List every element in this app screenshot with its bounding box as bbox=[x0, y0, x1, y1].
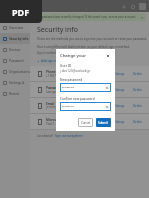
staticText: Password bbox=[9, 59, 24, 63]
button[interactable]: Submit bbox=[96, 118, 111, 127]
button[interactable]: Show password bbox=[104, 85, 109, 90]
button[interactable]: Security info bbox=[0, 33, 30, 44]
button[interactable]: PDF bbox=[0, 0, 42, 23]
staticText: Cancel bbox=[81, 121, 91, 125]
staticText: Change your password bbox=[60, 53, 105, 59]
button[interactable]: Cancel bbox=[78, 118, 93, 127]
staticText: Organizations bbox=[9, 70, 30, 74]
staticText: Recent activity bbox=[9, 92, 30, 96]
button[interactable]: Delete bbox=[133, 88, 142, 92]
staticText: Settings & Privacy bbox=[9, 81, 30, 85]
button[interactable]: Phone bbox=[30, 66, 149, 81]
staticText: Phone bbox=[46, 70, 56, 74]
staticText: PDF bbox=[12, 6, 30, 18]
staticText: Submit bbox=[98, 121, 109, 125]
button[interactable]: Settings & Privacy bbox=[0, 77, 30, 88]
staticText: j.doe123@outlook.jp bbox=[60, 69, 90, 73]
button[interactable]: Password bbox=[30, 82, 149, 97]
staticText: Security info bbox=[9, 37, 29, 41]
staticText: New password bbox=[60, 78, 83, 82]
button[interactable]: Delete bbox=[133, 120, 142, 124]
button[interactable]: Organizations bbox=[0, 66, 30, 77]
button[interactable]: Settings bbox=[121, 4, 127, 10]
staticText: You're using Microsoft Authenticator as … bbox=[37, 45, 130, 49]
staticText: Add sign-in method bbox=[41, 59, 69, 63]
staticText: Confirm new password bbox=[60, 97, 95, 101]
staticText: These are the methods you use to sign in… bbox=[37, 37, 147, 41]
button[interactable]: Show password bbox=[104, 104, 109, 109]
staticText: Email bbox=[46, 102, 55, 106]
button[interactable]: Change bbox=[114, 72, 125, 76]
staticText: Sign out everywhere bbox=[55, 134, 83, 138]
button[interactable]: •••••••••• bbox=[60, 102, 111, 111]
button[interactable]: Change bbox=[114, 120, 125, 124]
staticText: Last updated: 3 days ago bbox=[46, 90, 78, 94]
button[interactable]: Your password was recently changed. If t… bbox=[33, 13, 146, 21]
staticText: + bbox=[37, 58, 40, 63]
button[interactable]: Delete bbox=[133, 104, 142, 108]
staticText: User ID bbox=[60, 64, 72, 68]
button[interactable]: Lost device? bbox=[37, 134, 83, 138]
staticText: Password bbox=[46, 86, 61, 90]
button[interactable]: Delete bbox=[133, 72, 142, 76]
staticText: Security info bbox=[37, 25, 78, 35]
button[interactable]: Email bbox=[30, 98, 149, 113]
staticText: Microsoft Authenticator bbox=[46, 118, 83, 122]
staticText: +1 555 ******89 bbox=[46, 74, 68, 78]
button[interactable]: Password bbox=[0, 55, 30, 66]
staticText: Sign-in methods below are available to y… bbox=[37, 51, 90, 55]
staticText: •••••••••• bbox=[62, 86, 104, 90]
button[interactable]: Recent activity bbox=[0, 88, 30, 99]
staticText: Pixel 7 - Push notification bbox=[46, 122, 78, 126]
button[interactable]: Devices bbox=[0, 44, 30, 55]
staticText: Devices bbox=[9, 48, 21, 52]
staticText: ✕ bbox=[141, 16, 144, 19]
button[interactable]: + bbox=[37, 58, 69, 63]
staticText: Overview bbox=[9, 26, 23, 30]
button[interactable]: Change bbox=[114, 104, 125, 108]
button[interactable]: •••••••••• bbox=[60, 83, 111, 92]
button[interactable]: Change bbox=[114, 88, 125, 92]
button[interactable]: Microsoft Authenticator bbox=[30, 114, 149, 129]
button[interactable]: Help bbox=[130, 4, 136, 10]
staticText: Your password was recently changed. If t… bbox=[35, 15, 137, 19]
button[interactable]: Overview bbox=[0, 22, 30, 33]
button[interactable]: Close bbox=[105, 53, 111, 59]
staticText: Lost device? bbox=[37, 134, 55, 138]
staticText: j******@outlook.com bbox=[46, 106, 74, 110]
staticText: •••••••••• bbox=[62, 105, 104, 109]
